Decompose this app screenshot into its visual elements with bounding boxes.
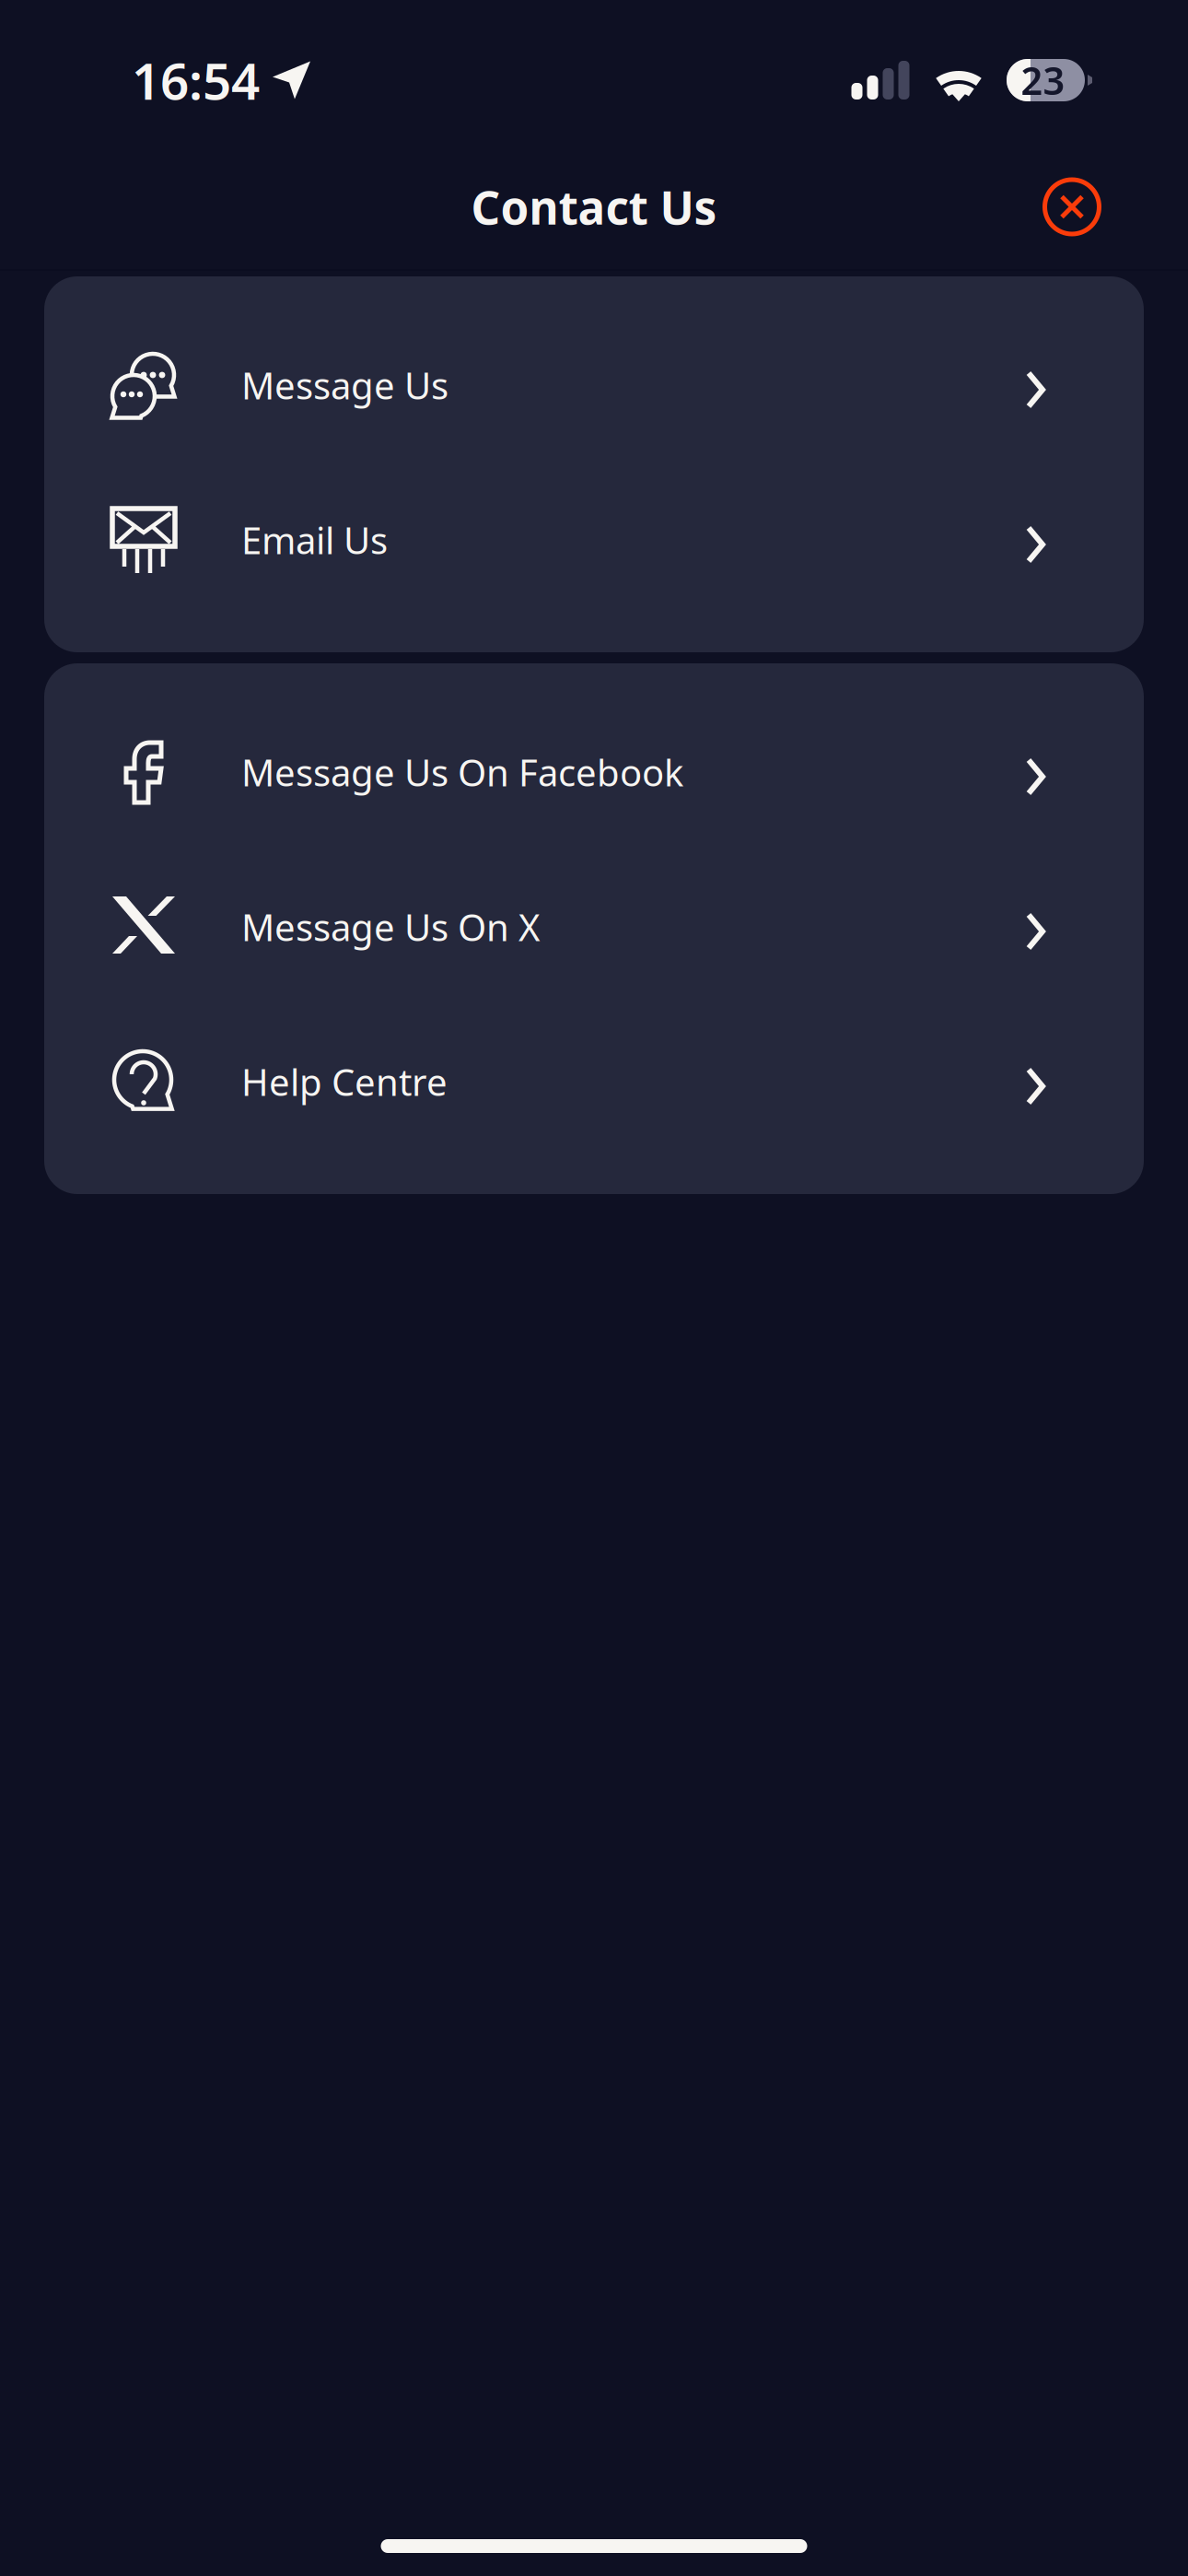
staticText: Message Us On X: [241, 902, 540, 951]
staticText: Message Us On Facebook: [241, 748, 683, 796]
staticText: Message Us: [241, 361, 448, 410]
staticText: 16:54: [132, 47, 260, 114]
staticText: 23: [1021, 55, 1065, 105]
staticText: Help Centre: [241, 1057, 448, 1106]
button[interactable]: Email Us: [44, 467, 1144, 622]
button[interactable]: Help Centre: [44, 1009, 1144, 1164]
button[interactable]: Message Us On X: [44, 854, 1144, 1009]
button[interactable]: Message Us On Facebook: [44, 699, 1144, 854]
staticText: Email Us: [241, 515, 388, 564]
button[interactable]: Close: [1031, 165, 1113, 248]
button[interactable]: Message Us: [44, 312, 1144, 467]
staticText: Contact Us: [471, 177, 717, 237]
